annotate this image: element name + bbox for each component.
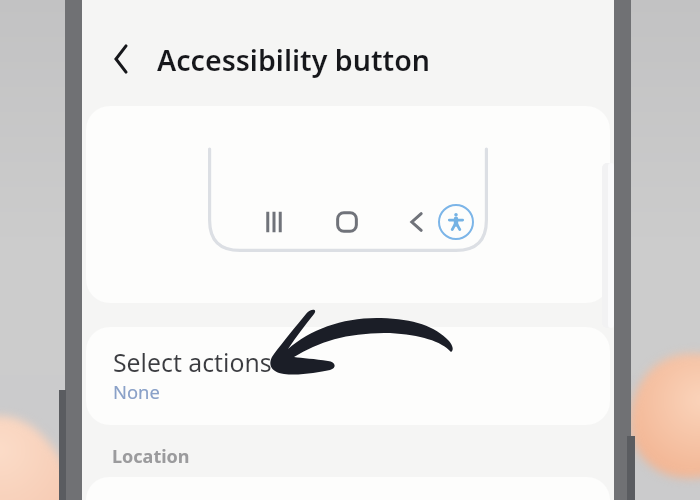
button[interactable]: Select actions xyxy=(86,327,610,425)
button[interactable]: Accessibility button xyxy=(437,203,475,241)
staticText: None xyxy=(113,379,160,404)
staticText: Accessibility button xyxy=(157,40,431,79)
button[interactable]: Back xyxy=(98,36,144,82)
staticText: Location xyxy=(112,444,190,469)
staticText: Select actions xyxy=(113,345,272,379)
